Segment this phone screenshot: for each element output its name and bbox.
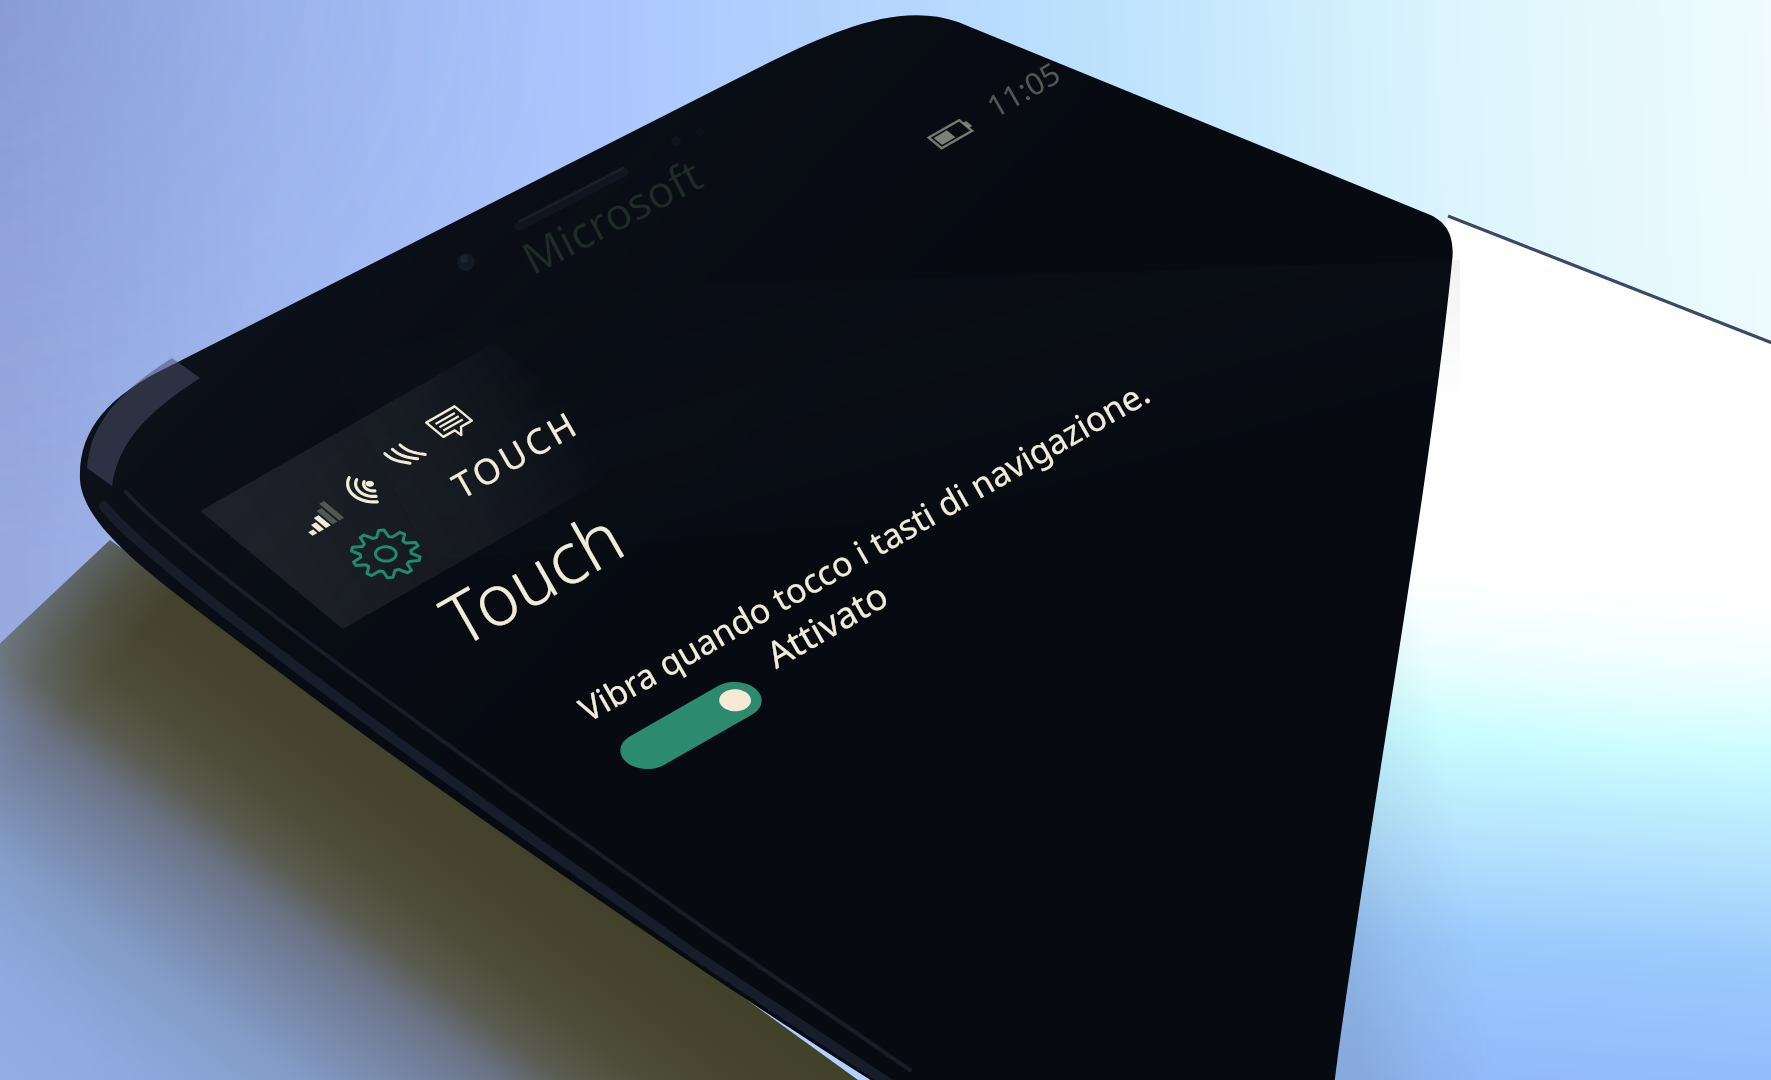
button[interactable]: Touch settings screen on a Lumia phone — [0, 0, 1771, 1080]
